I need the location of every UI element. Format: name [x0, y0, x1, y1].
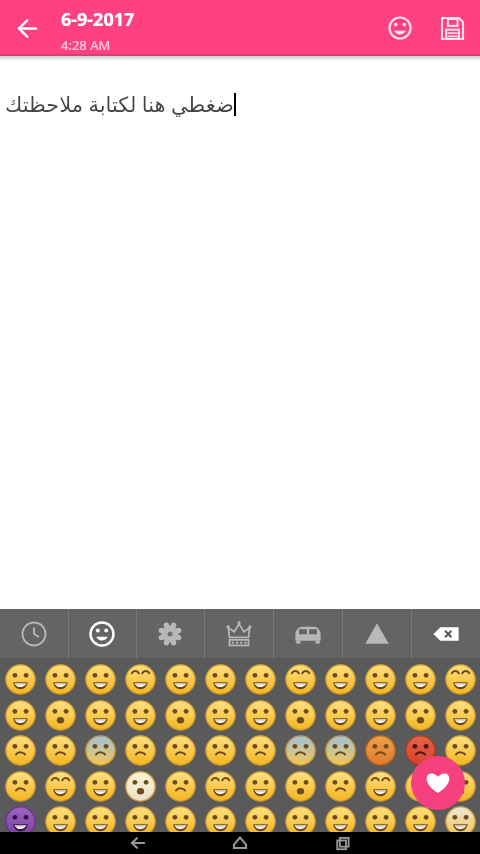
button[interactable] — [241, 662, 279, 696]
button[interactable] — [241, 733, 279, 767]
button[interactable] — [81, 662, 119, 696]
button[interactable] — [321, 698, 359, 732]
button[interactable] — [401, 769, 439, 803]
button[interactable] — [281, 662, 319, 696]
button[interactable] — [0, 609, 68, 658]
staticText: 6-9-2017 — [61, 7, 135, 32]
button[interactable] — [121, 804, 159, 832]
button[interactable] — [81, 733, 119, 767]
button[interactable] — [281, 733, 319, 767]
button[interactable] — [321, 804, 359, 832]
button[interactable] — [81, 698, 119, 732]
button[interactable] — [361, 698, 399, 732]
button[interactable] — [41, 769, 79, 803]
button[interactable] — [342, 609, 411, 658]
button[interactable] — [361, 804, 399, 832]
button[interactable] — [201, 662, 239, 696]
button[interactable] — [308, 832, 378, 854]
button[interactable] — [81, 804, 119, 832]
button[interactable] — [361, 662, 399, 696]
staticText: ضغطي هنا لكتابة ملاحظتك — [5, 90, 234, 119]
button[interactable] — [401, 662, 439, 696]
button[interactable] — [201, 804, 239, 832]
button[interactable] — [441, 698, 479, 732]
button[interactable] — [8, 9, 46, 47]
button[interactable] — [241, 698, 279, 732]
button[interactable] — [1, 769, 39, 803]
button[interactable] — [401, 804, 439, 832]
button[interactable] — [441, 662, 479, 696]
button[interactable] — [68, 609, 136, 658]
button[interactable] — [41, 733, 79, 767]
button[interactable] — [161, 804, 199, 832]
button[interactable] — [401, 733, 439, 767]
button[interactable] — [281, 769, 319, 803]
button[interactable] — [1, 662, 39, 696]
button[interactable] — [281, 698, 319, 732]
button[interactable] — [205, 832, 275, 854]
button[interactable] — [441, 769, 479, 803]
button[interactable] — [1, 804, 39, 832]
button[interactable] — [378, 6, 422, 50]
button[interactable] — [321, 769, 359, 803]
button[interactable] — [241, 804, 279, 832]
button[interactable] — [411, 756, 465, 810]
button[interactable] — [81, 769, 119, 803]
button[interactable] — [201, 733, 239, 767]
button[interactable] — [430, 6, 474, 50]
button[interactable] — [121, 698, 159, 732]
button[interactable] — [401, 698, 439, 732]
button[interactable] — [41, 804, 79, 832]
button[interactable] — [121, 662, 159, 696]
button[interactable] — [1, 733, 39, 767]
button[interactable] — [441, 733, 479, 767]
button[interactable] — [321, 733, 359, 767]
button[interactable] — [201, 769, 239, 803]
button[interactable] — [361, 769, 399, 803]
button[interactable] — [136, 609, 204, 658]
button[interactable] — [201, 698, 239, 732]
staticText: 4:28 AM — [61, 36, 111, 54]
button[interactable] — [204, 609, 273, 658]
button[interactable]: ضغطي هنا لكتابة ملاحظتك — [5, 90, 236, 119]
button[interactable] — [161, 733, 199, 767]
button[interactable] — [361, 733, 399, 767]
button[interactable] — [273, 609, 342, 658]
button[interactable] — [102, 832, 172, 854]
button[interactable] — [321, 662, 359, 696]
button[interactable] — [161, 698, 199, 732]
button[interactable] — [241, 769, 279, 803]
button[interactable] — [441, 804, 479, 832]
button[interactable] — [41, 698, 79, 732]
button[interactable] — [1, 698, 39, 732]
button[interactable] — [161, 769, 199, 803]
button[interactable] — [411, 609, 480, 658]
button[interactable] — [161, 662, 199, 696]
button[interactable] — [41, 662, 79, 696]
button[interactable] — [121, 769, 159, 803]
button[interactable] — [281, 804, 319, 832]
button[interactable] — [121, 733, 159, 767]
